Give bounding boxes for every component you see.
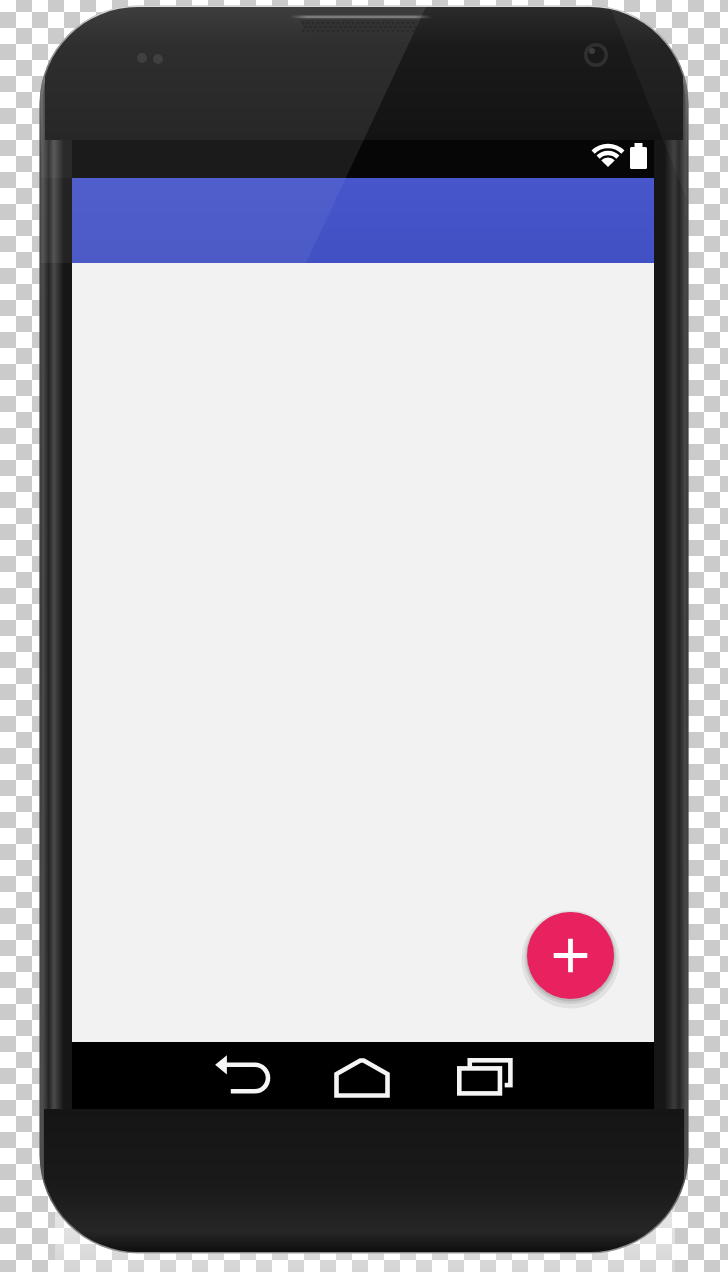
button[interactable] — [214, 1058, 270, 1098]
button[interactable] — [334, 1058, 390, 1098]
button[interactable] — [457, 1058, 515, 1098]
button[interactable] — [527, 912, 614, 999]
